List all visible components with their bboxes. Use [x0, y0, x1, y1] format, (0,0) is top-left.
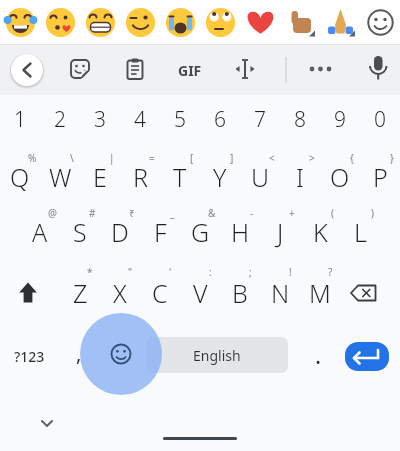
staticText: F — [154, 215, 167, 249]
staticText: = — [149, 151, 155, 165]
staticText: ' — [169, 265, 172, 279]
staticText: | — [109, 151, 115, 165]
staticText: C — [152, 276, 168, 310]
staticText: English — [193, 346, 241, 365]
staticText: L — [354, 215, 367, 249]
staticText: U — [251, 160, 270, 194]
staticText: ? — [328, 265, 333, 279]
staticText: K — [313, 215, 328, 249]
staticText: - — [250, 206, 254, 220]
staticText: " — [128, 265, 133, 279]
staticText: M — [309, 276, 331, 310]
staticText: * — [87, 265, 93, 279]
staticText: % — [28, 151, 37, 165]
staticText: H — [231, 215, 250, 249]
staticText: A — [32, 215, 48, 249]
staticText: N — [271, 276, 290, 310]
staticText: W — [49, 160, 72, 194]
staticText: ?123 — [14, 347, 45, 366]
staticText: 8 — [294, 105, 306, 134]
staticText: ( — [331, 206, 334, 220]
staticText: V — [193, 276, 208, 310]
staticText: + — [289, 206, 295, 220]
staticText: [ — [190, 151, 194, 165]
staticText: { — [350, 151, 354, 165]
staticText: 4 — [134, 105, 146, 134]
staticText: & — [208, 206, 216, 220]
staticText: < — [269, 151, 275, 165]
staticText: ₹ — [129, 206, 135, 220]
staticText: O — [330, 160, 350, 194]
staticText: G — [191, 215, 210, 249]
staticText: ] — [230, 151, 234, 165]
staticText: S — [73, 215, 87, 249]
staticText: P — [373, 160, 388, 194]
staticText: 6 — [214, 105, 226, 134]
staticText: > — [309, 151, 315, 165]
staticText: . — [315, 339, 322, 370]
staticText: E — [93, 160, 107, 194]
staticText: 3 — [94, 105, 106, 134]
staticText: Q — [10, 160, 30, 194]
staticText: 7 — [254, 105, 266, 134]
staticText: 5 — [174, 105, 186, 134]
staticText: 0 — [374, 105, 386, 134]
staticText: X — [113, 276, 127, 310]
staticText: _ — [170, 206, 175, 220]
staticText: R — [133, 160, 148, 194]
staticText: } — [390, 151, 394, 165]
staticText: \ — [70, 151, 74, 165]
staticText: T — [173, 160, 187, 194]
staticText: B — [232, 276, 248, 310]
staticText: , — [76, 340, 82, 367]
staticText: 1 — [14, 105, 26, 134]
staticText: Z — [73, 276, 88, 310]
staticText: 2 — [54, 105, 66, 134]
staticText: ! — [289, 265, 292, 279]
staticText: D — [111, 215, 129, 249]
staticText: # — [89, 206, 96, 220]
staticText: ; — [249, 265, 252, 279]
staticText: ) — [371, 206, 374, 220]
staticText: J — [277, 215, 284, 249]
staticText: GIF — [178, 61, 202, 80]
staticText: I — [296, 160, 304, 194]
staticText: @ — [48, 206, 57, 220]
staticText: 9 — [334, 105, 346, 134]
staticText: : — [209, 265, 212, 279]
staticText: Y — [213, 160, 227, 194]
